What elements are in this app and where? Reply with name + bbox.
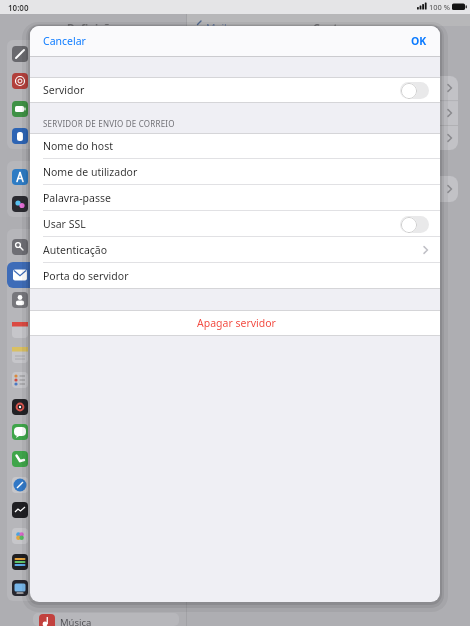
staticText: Nome do host (43, 139, 114, 153)
button[interactable]: OK (398, 26, 440, 56)
staticText: Música (60, 616, 92, 626)
staticText: 10:00 (8, 2, 29, 13)
staticText: Mail (206, 21, 227, 35)
button[interactable]: Apagar servidor (30, 310, 440, 336)
button[interactable]: Autenticação (30, 237, 440, 263)
staticText: Porta do servidor (43, 269, 129, 283)
staticText: Nome de utilizador (43, 165, 138, 179)
button[interactable]: Nome do host (30, 133, 440, 159)
staticText: Autenticação (43, 243, 108, 257)
staticText: OK (411, 34, 427, 48)
staticText: Servidor (43, 83, 85, 97)
button[interactable]: Servidor (30, 77, 440, 103)
button[interactable]: Nome de utilizador (30, 159, 440, 185)
staticText: Usar SSL (43, 217, 86, 231)
staticText: SERVIDOR DE ENVIO DE CORREIO (43, 118, 175, 129)
button[interactable]: Cancelar (30, 26, 99, 56)
staticText: Cancelar (43, 34, 86, 48)
button[interactable]: Palavra-passe (30, 185, 440, 211)
staticText: Contas (313, 21, 350, 35)
staticText: Apagar servidor (197, 316, 276, 330)
staticText: Definições (67, 21, 122, 35)
button[interactable]: Porta do servidor (30, 263, 440, 289)
staticText: Palavra-passe (43, 191, 111, 205)
button[interactable] (400, 82, 429, 99)
button[interactable]: Usar SSL (30, 211, 440, 237)
staticText: 100 % (429, 2, 451, 12)
button[interactable] (400, 216, 429, 233)
